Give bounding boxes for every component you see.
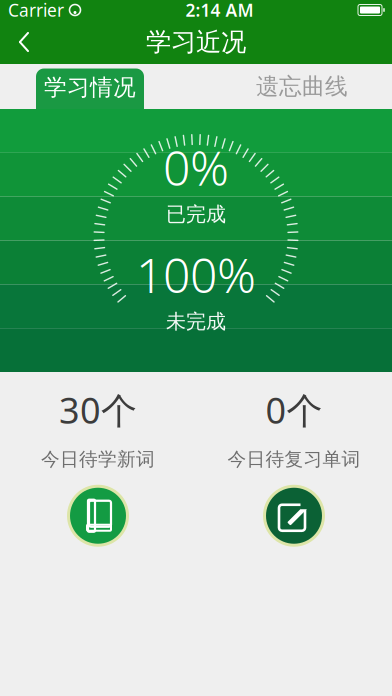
staticText: 学习近况 — [146, 26, 246, 57]
button[interactable]: 学习情况 — [36, 64, 144, 109]
staticText: 30个 — [59, 386, 137, 434]
button[interactable]: 今日待学新词 — [67, 485, 129, 547]
staticText: 未完成 — [166, 309, 226, 334]
staticText: Carrier — [8, 0, 64, 21]
staticText: 100% — [136, 242, 256, 306]
staticText: 已完成 — [166, 202, 226, 226]
button[interactable]: Back — [0, 20, 48, 64]
staticText: 遗忘曲线 — [256, 73, 348, 100]
staticText: 0个 — [265, 386, 322, 434]
staticText: 0% — [163, 135, 229, 199]
button[interactable]: 遗忘曲线 — [248, 64, 356, 109]
staticText: 2:14 AM — [185, 0, 253, 21]
staticText: 今日待复习单词 — [227, 448, 360, 471]
staticText: 学习情况 — [44, 74, 136, 101]
staticText: 今日待学新词 — [41, 448, 155, 471]
button[interactable]: 今日待复习单词 — [263, 485, 325, 547]
